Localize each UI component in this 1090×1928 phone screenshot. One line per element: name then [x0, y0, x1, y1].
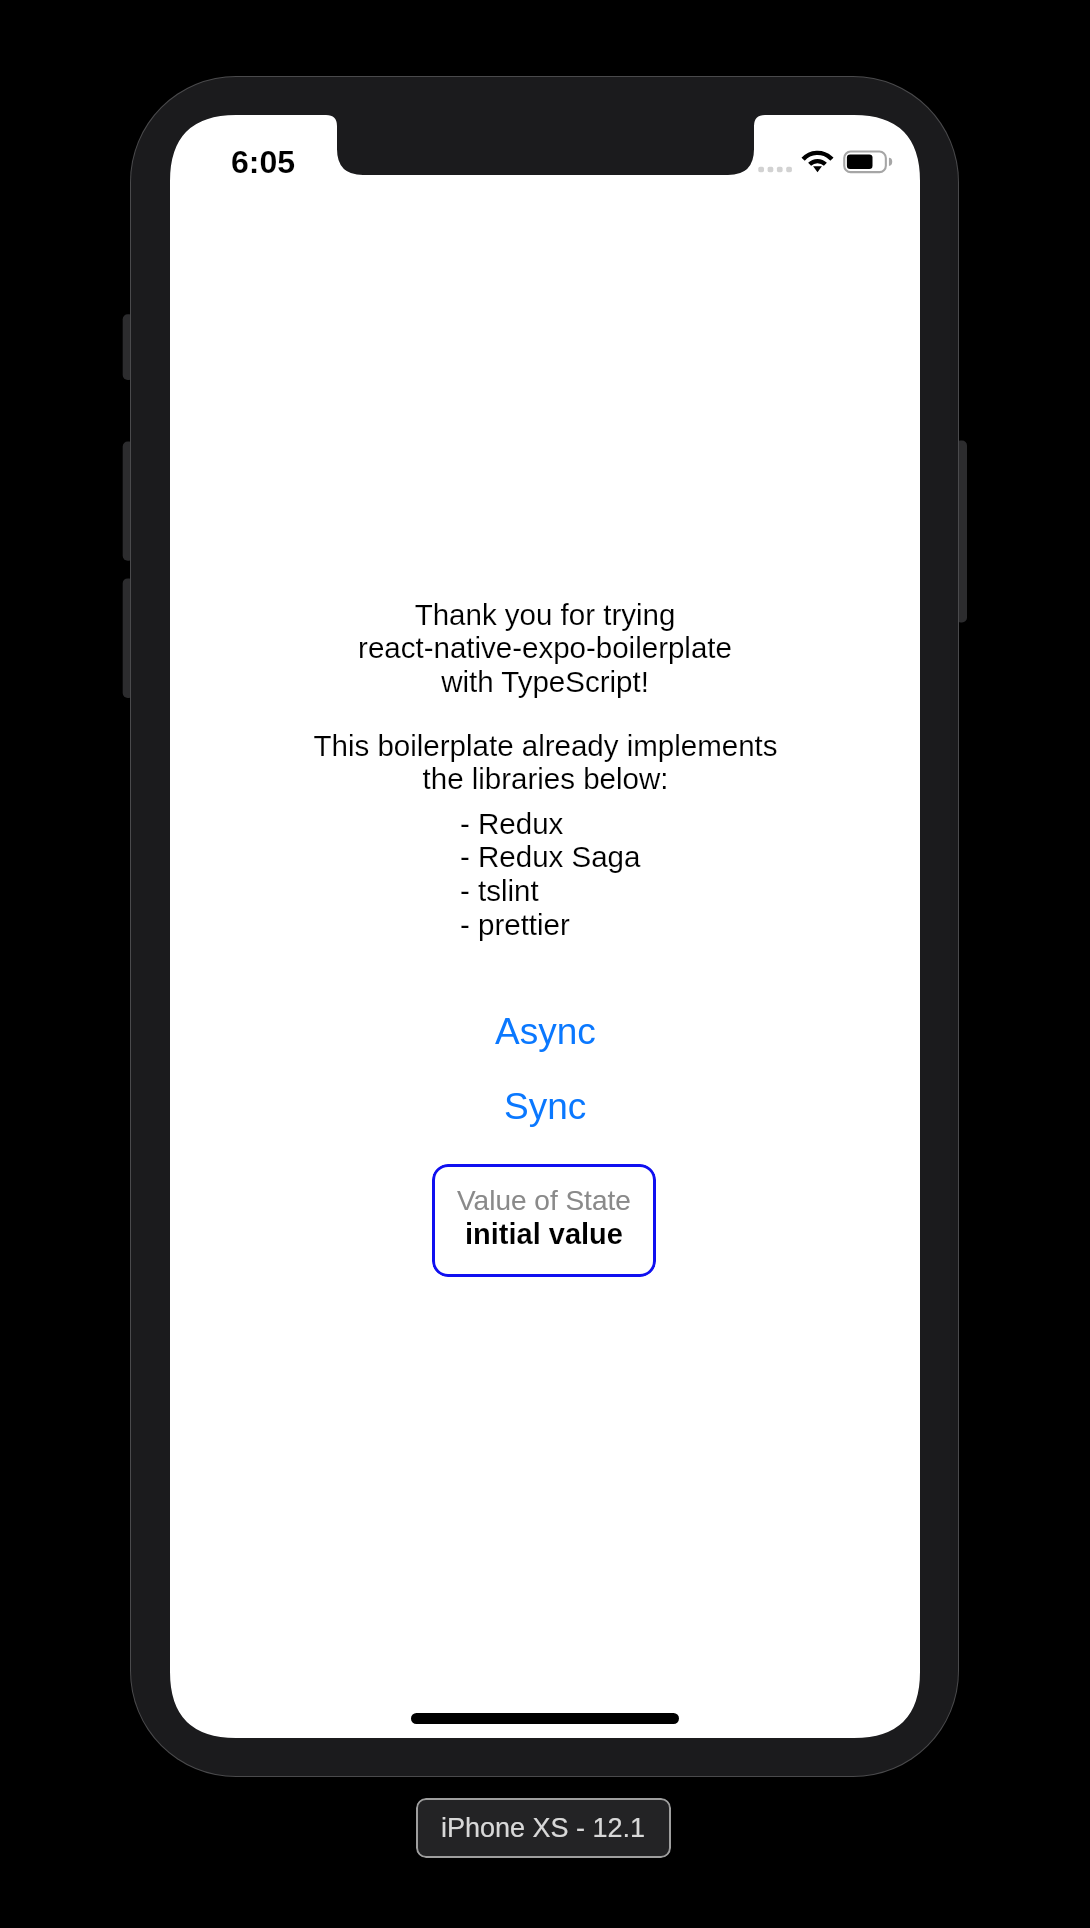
staticText: 6:05	[231, 144, 296, 180]
button[interactable]: Value of State	[432, 1164, 656, 1277]
staticText: Async	[495, 1011, 596, 1052]
button[interactable]: Sync	[504, 1086, 587, 1127]
staticText: - Redux - Redux Saga - tslint - prettier	[460, 807, 641, 942]
staticText: initial value	[465, 1218, 623, 1250]
staticText: Value of State	[457, 1185, 631, 1216]
staticText: This boilerplate already implements the …	[313, 729, 778, 796]
button[interactable]: iPhone XS - 12.1	[416, 1798, 671, 1858]
staticText: Thank you for trying react-native-expo-b…	[358, 598, 732, 699]
button[interactable]: Async	[495, 1011, 596, 1052]
staticText: Sync	[504, 1086, 587, 1127]
other: Status icons	[750, 140, 900, 185]
staticText: iPhone XS - 12.1	[441, 1813, 646, 1843]
